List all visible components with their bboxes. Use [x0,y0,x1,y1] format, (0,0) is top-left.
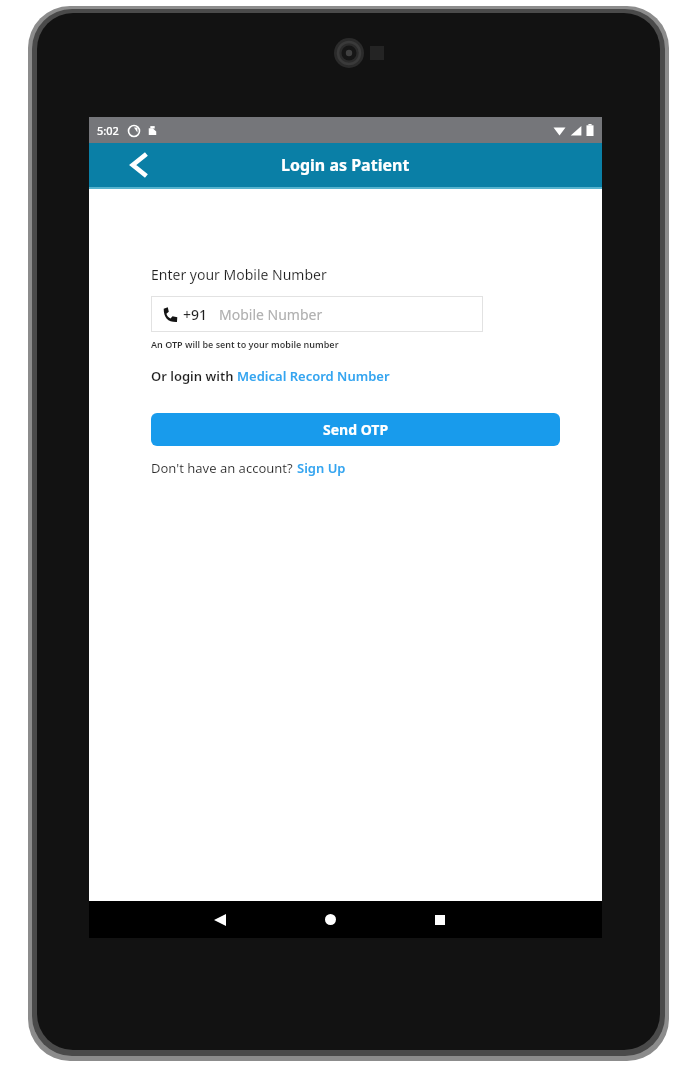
staticText: An OTP will be sent to your mobile numbe… [151,338,339,350]
button[interactable]: Recent apps [419,901,461,938]
staticText: Or login with [151,367,237,385]
button[interactable]: +91 [151,296,483,332]
staticText: Send OTP [323,420,389,439]
staticText: Medical Record Number [237,367,390,385]
button[interactable]: Medical Record Number [237,367,390,385]
button[interactable]: Send OTP [151,413,560,446]
staticText: Don't have an account? [151,459,297,477]
staticText: Sign Up [297,459,346,477]
staticText: Login as Patient [281,154,410,176]
staticText: +91 [183,305,208,324]
staticText: 5:02 [97,123,119,138]
staticText: Mobile Number [219,305,323,324]
staticText: Enter your Mobile Number [151,265,327,284]
button[interactable]: Sign Up [297,459,346,477]
button[interactable]: Back [199,901,241,938]
button[interactable]: Back [121,148,155,182]
button[interactable]: Home [309,901,351,938]
